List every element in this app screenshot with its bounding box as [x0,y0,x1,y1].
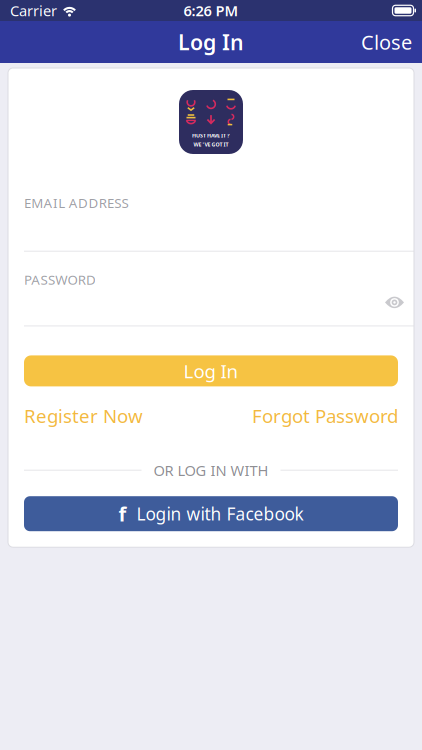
staticText: EMAIL ADDRESS [24,194,129,212]
button[interactable]: Close [361,29,412,55]
button[interactable]: Register Now [24,403,143,428]
staticText: Forgot Password [252,403,398,428]
staticText: WE 'VE GOT IT [193,141,228,148]
button[interactable]: f [24,496,398,531]
staticText: Log In [183,358,238,383]
staticText: OR LOG IN WITH [153,460,268,480]
staticText: Login with Facebook [136,502,303,525]
button[interactable]: Log In [24,355,398,386]
staticText: Register Now [24,403,143,428]
staticText: f [118,500,126,527]
button[interactable]: Forgot Password [252,403,398,428]
staticText: HUST HAVE IT ? [192,132,230,139]
button[interactable]: Show password [385,295,404,309]
staticText: Close [361,29,412,55]
staticText: Log In [178,28,244,56]
staticText: 6:26 PM [183,1,238,20]
staticText: PASSWORD [24,271,96,288]
staticText: Carrier [10,1,57,20]
